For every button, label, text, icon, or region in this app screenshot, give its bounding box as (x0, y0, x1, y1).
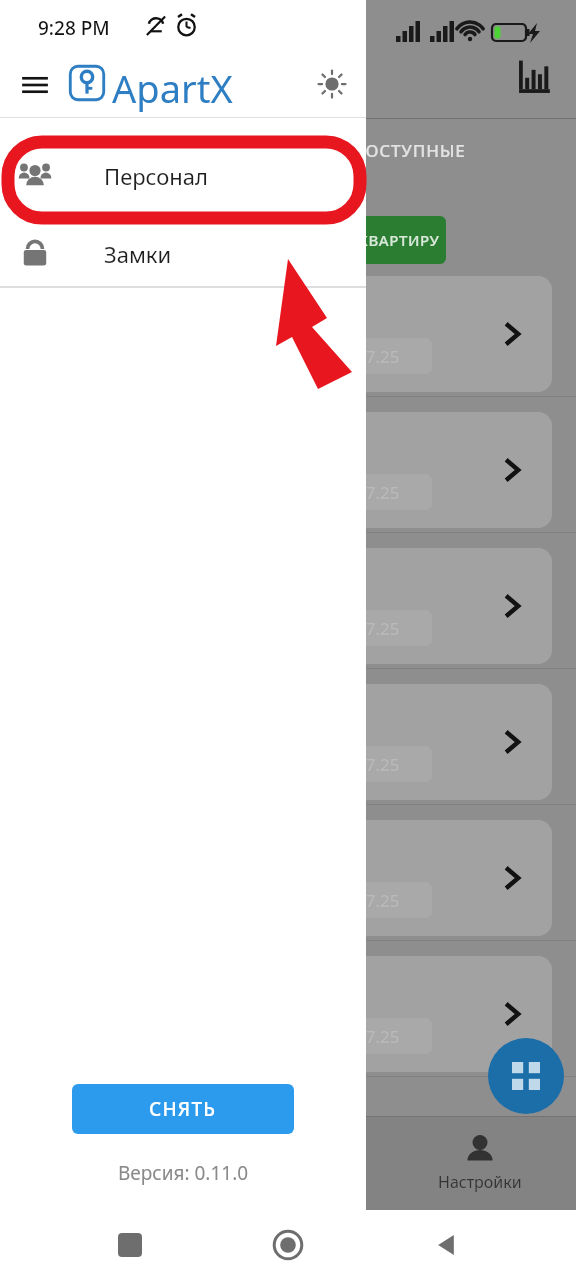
button[interactable]: 07.25 (24, 548, 552, 664)
button[interactable]: Персонал (0, 144, 366, 208)
button[interactable]: Home (260, 1217, 316, 1273)
staticText: Персонал (104, 161, 208, 191)
staticText: Версия: 0.11.0 (0, 1160, 366, 1186)
staticText: 9:28 PM (38, 15, 110, 41)
button[interactable]: Recent apps (102, 1217, 158, 1273)
button[interactable]: Замки (0, 222, 366, 286)
staticText: ДОБАВИТЬ КВАРТИРУ (268, 230, 440, 250)
staticText: 07.25 (356, 889, 400, 912)
button[interactable]: Open navigation menu (12, 62, 58, 108)
staticText: Настройки (438, 1171, 522, 1193)
button[interactable]: Back (418, 1217, 474, 1273)
staticText: ДОСТУПНЫЕ (352, 139, 466, 162)
button[interactable]: 07.25 (24, 276, 552, 392)
button[interactable]: Scan QR code (488, 1038, 564, 1114)
staticText: ApartX (112, 62, 233, 114)
button[interactable]: 07.25 (24, 412, 552, 528)
button[interactable]: Brightness (310, 62, 354, 106)
button[interactable]: Настройки (420, 1116, 540, 1210)
staticText: Замки (104, 239, 172, 269)
staticText: 07.25 (356, 617, 400, 640)
staticText: 07.25 (356, 345, 400, 368)
button[interactable]: Statistics (512, 54, 556, 98)
button[interactable]: ДОБАВИТЬ КВАРТИРУ (262, 216, 446, 264)
button[interactable]: СНЯТЬ (72, 1084, 294, 1134)
staticText: 07.25 (356, 1025, 400, 1048)
button[interactable]: 07.25 (24, 820, 552, 936)
staticText: СНЯТЬ (149, 1096, 217, 1122)
button[interactable]: 07.25 (24, 956, 552, 1072)
staticText: 07.25 (356, 481, 400, 504)
staticText: 07.25 (356, 753, 400, 776)
button[interactable]: 07.25 (24, 684, 552, 800)
